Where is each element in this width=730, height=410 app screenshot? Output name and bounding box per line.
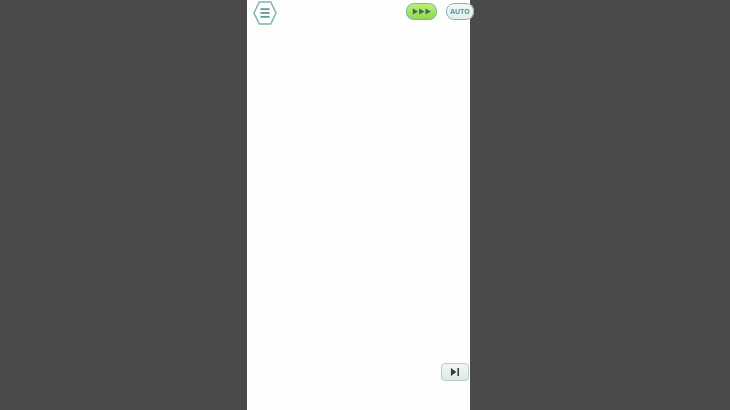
button[interactable]: Menu xyxy=(253,1,277,25)
staticText: AUTO xyxy=(450,7,470,17)
button[interactable]: Fast forward xyxy=(406,3,437,20)
button[interactable]: Skip xyxy=(441,363,469,381)
button[interactable]: AUTO xyxy=(446,3,474,20)
